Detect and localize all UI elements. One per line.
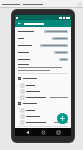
button[interactable] (18, 36, 68, 41)
button[interactable] (18, 76, 68, 81)
button[interactable] (18, 101, 68, 106)
button[interactable] (18, 114, 68, 118)
button[interactable] (40, 44, 68, 47)
button[interactable] (18, 108, 68, 112)
button[interactable] (18, 43, 68, 48)
button[interactable] (52, 37, 68, 40)
button[interactable] (18, 95, 68, 99)
button[interactable] (44, 30, 68, 33)
button[interactable]: Home (40, 129, 47, 136)
button[interactable] (18, 89, 68, 93)
button[interactable] (18, 83, 68, 87)
button[interactable]: Back (24, 129, 31, 136)
button[interactable] (18, 50, 68, 55)
button[interactable] (54, 51, 68, 54)
button[interactable] (18, 120, 68, 124)
button[interactable]: Back (17, 21, 22, 26)
button[interactable] (59, 58, 68, 61)
button[interactable] (18, 57, 68, 62)
button[interactable] (18, 29, 68, 34)
button[interactable]: Recents (55, 129, 62, 136)
button[interactable]: Add (57, 113, 68, 124)
